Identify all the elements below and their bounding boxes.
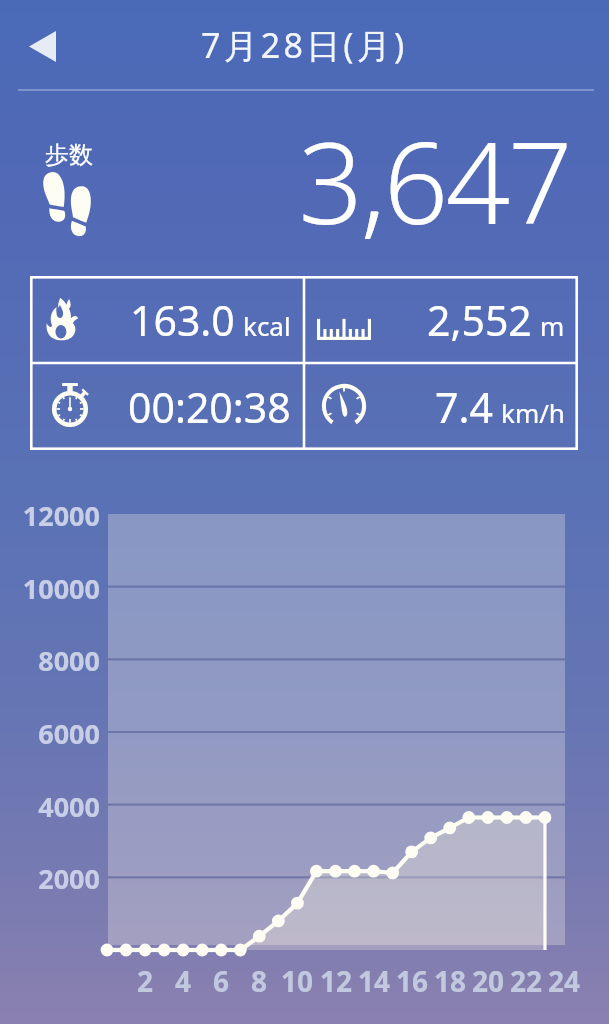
button[interactable]: 2,552 [304,276,578,363]
staticText: 163.0 [130,292,235,348]
staticText: 8000 [16,642,100,679]
staticText: 00:20:38 [128,379,291,435]
staticText: 14 [354,962,394,1000]
staticText: 6 [201,962,241,1000]
staticText: m [540,308,565,343]
staticText: 6000 [16,715,100,752]
staticText: 2000 [16,860,100,897]
staticText: 12000 [16,497,100,534]
staticText: kcal [243,308,291,343]
staticText: 8 [239,962,279,1000]
staticText: 7月28日(月) [201,22,408,68]
staticText: 歩数 [45,140,93,170]
staticText: 7.4 [435,379,493,435]
staticText: 2 [125,962,165,1000]
staticText: 4 [163,962,203,1000]
staticText: 16 [392,962,432,1000]
button[interactable]: Back [14,18,70,74]
staticText: 22 [506,962,546,1000]
staticText: 4000 [16,788,100,825]
staticText: 12 [316,962,356,1000]
staticText: 24 [544,962,584,1000]
staticText: 2,552 [427,292,532,348]
button[interactable]: 163.0 [30,276,304,363]
button[interactable]: 00:20:38 [30,363,304,450]
staticText: 18 [430,962,470,1000]
staticText: 10000 [16,570,100,607]
button[interactable]: 7.4 [304,363,578,450]
staticText: km/h [501,395,565,430]
staticText: 10 [277,962,317,1000]
staticText: 3,647 [230,103,570,257]
staticText: 20 [468,962,508,1000]
